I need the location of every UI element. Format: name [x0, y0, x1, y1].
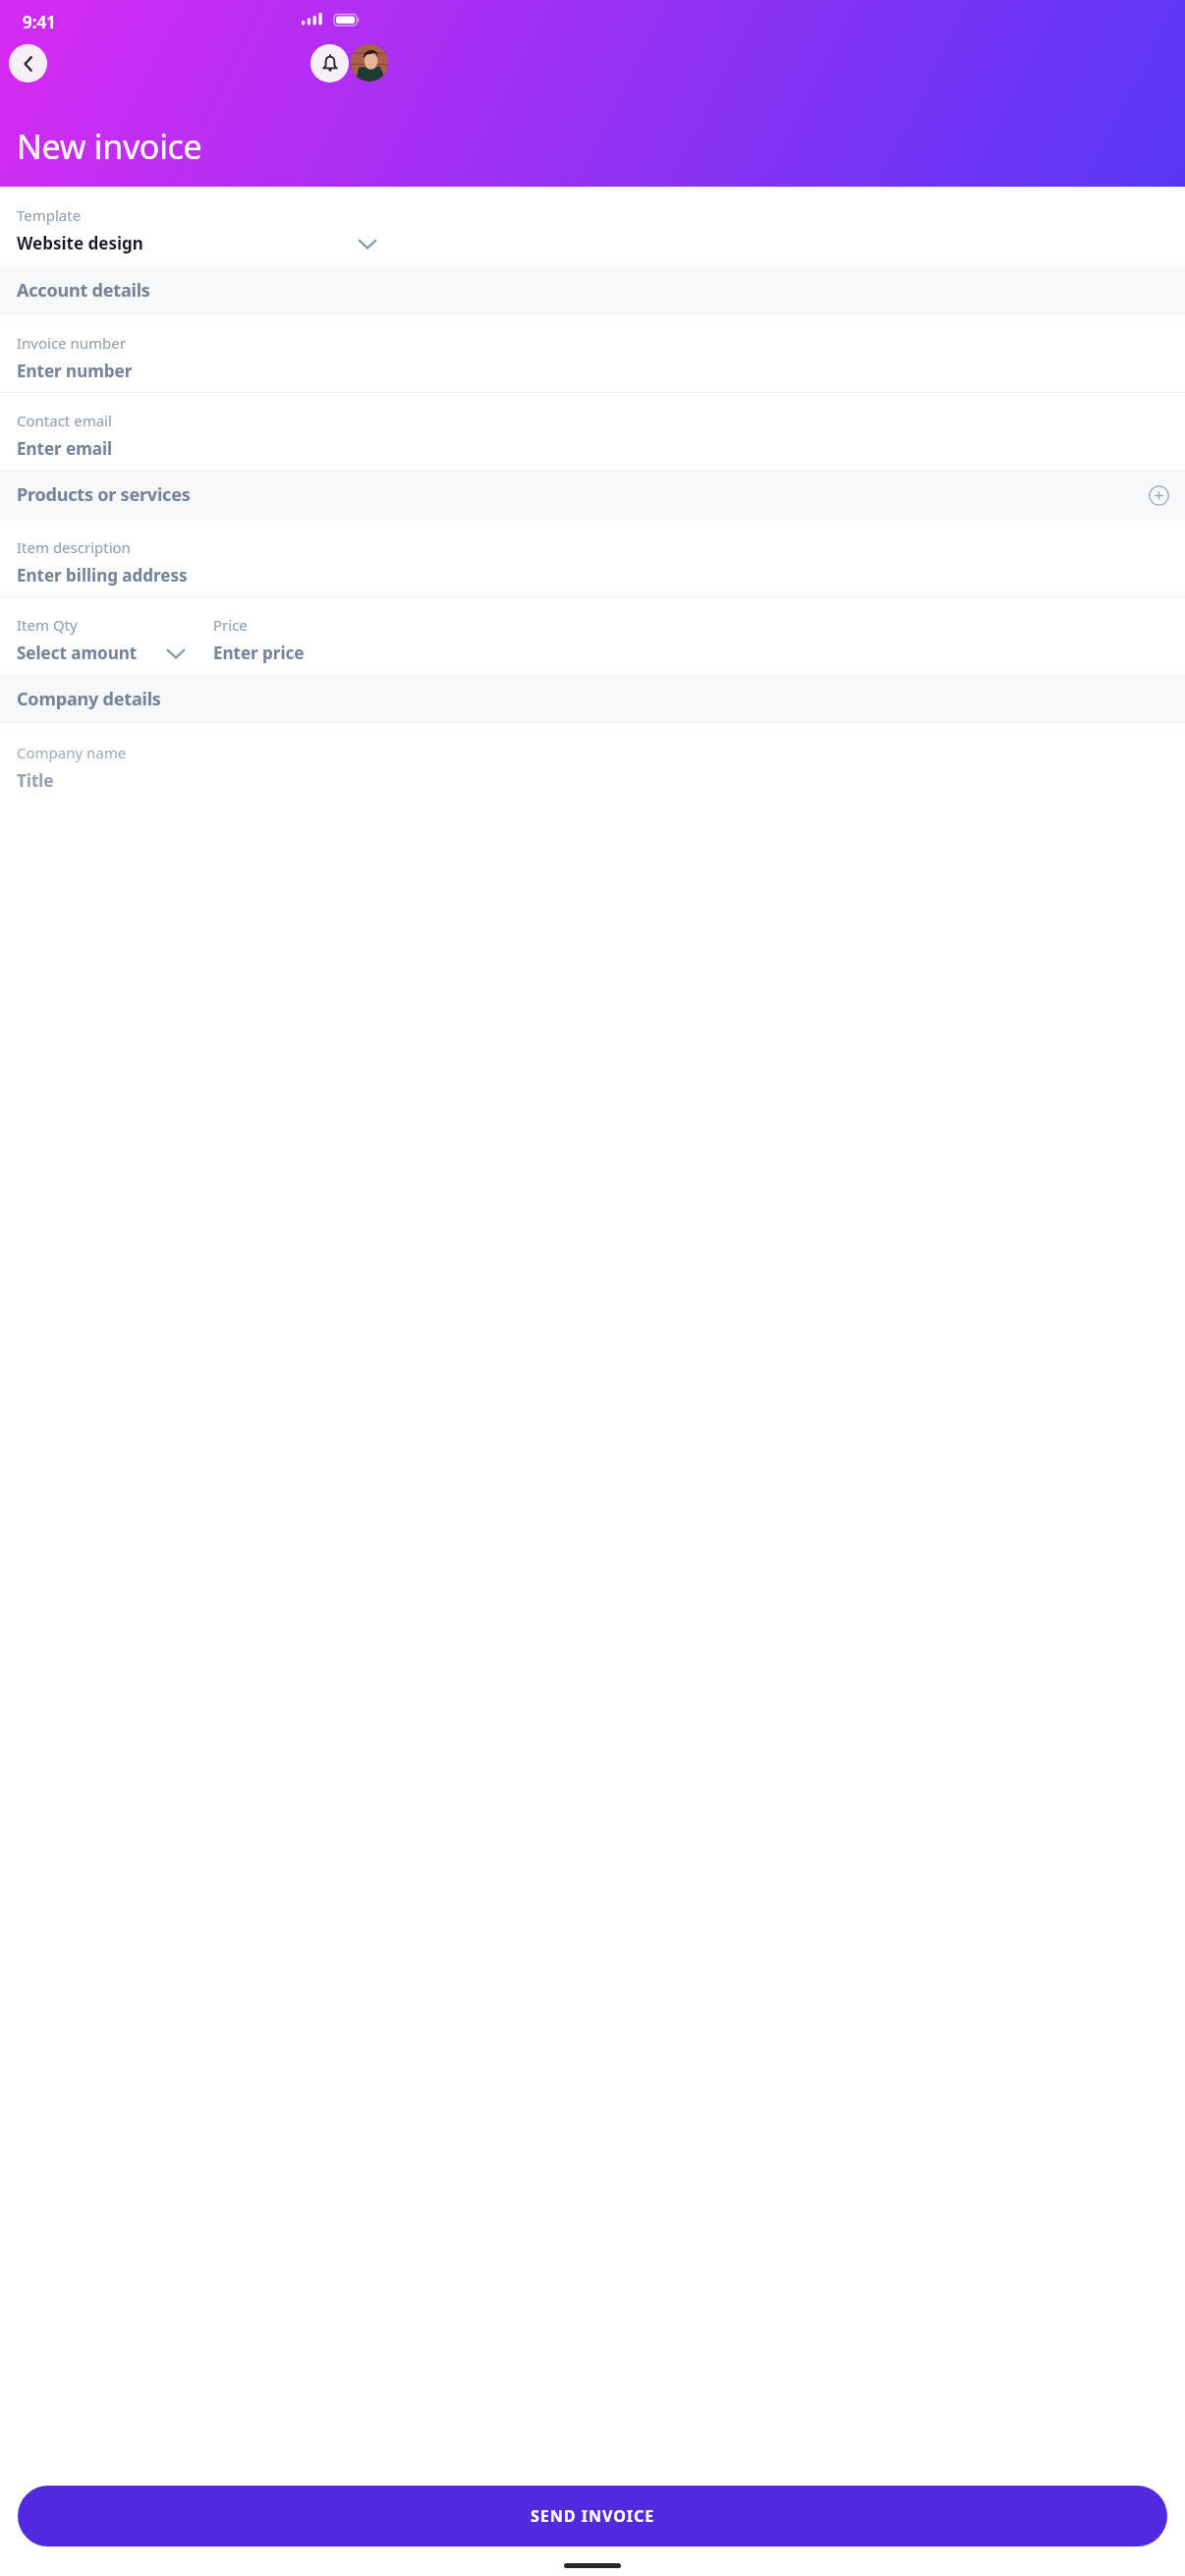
staticText: Account details [17, 278, 150, 303]
staticText: SEND INVOICE [531, 2505, 655, 2527]
staticText: Template [17, 205, 82, 225]
button[interactable]: Back [9, 44, 47, 83]
staticText: Select amount [17, 642, 138, 664]
staticText: Item description [17, 537, 131, 557]
staticText: Item Qty [17, 615, 78, 635]
staticText: Price [213, 615, 248, 635]
button[interactable]: Company details [0, 674, 1185, 724]
button[interactable]: Template [0, 187, 1185, 265]
staticText: Title [17, 769, 54, 792]
button[interactable]: SEND INVOICE [18, 2486, 1167, 2547]
button[interactable]: Add item [1146, 482, 1171, 508]
button[interactable]: Account details [0, 265, 1185, 315]
button[interactable]: Contact email [0, 393, 1185, 470]
staticText: New invoice [17, 124, 202, 169]
staticText: Enter price [213, 642, 305, 664]
staticText: Company details [17, 687, 161, 711]
staticText: Website design [17, 232, 143, 254]
button[interactable]: Products or services [0, 470, 1185, 520]
button[interactable]: Invoice number [0, 315, 1185, 392]
staticText: Contact email [17, 411, 112, 430]
button[interactable]: Profile [351, 44, 388, 82]
staticText: Enter number [17, 360, 133, 382]
staticText: Enter email [17, 437, 113, 460]
button[interactable]: Item Qty [0, 597, 1185, 674]
button[interactable]: Item description [0, 520, 1185, 596]
button[interactable]: Notifications [310, 44, 349, 83]
staticText: Invoice number [17, 333, 126, 353]
staticText: Enter billing address [17, 564, 188, 587]
staticText: Company name [17, 743, 127, 762]
staticText: Products or services [17, 482, 191, 507]
staticText: 9:41 [23, 11, 56, 33]
